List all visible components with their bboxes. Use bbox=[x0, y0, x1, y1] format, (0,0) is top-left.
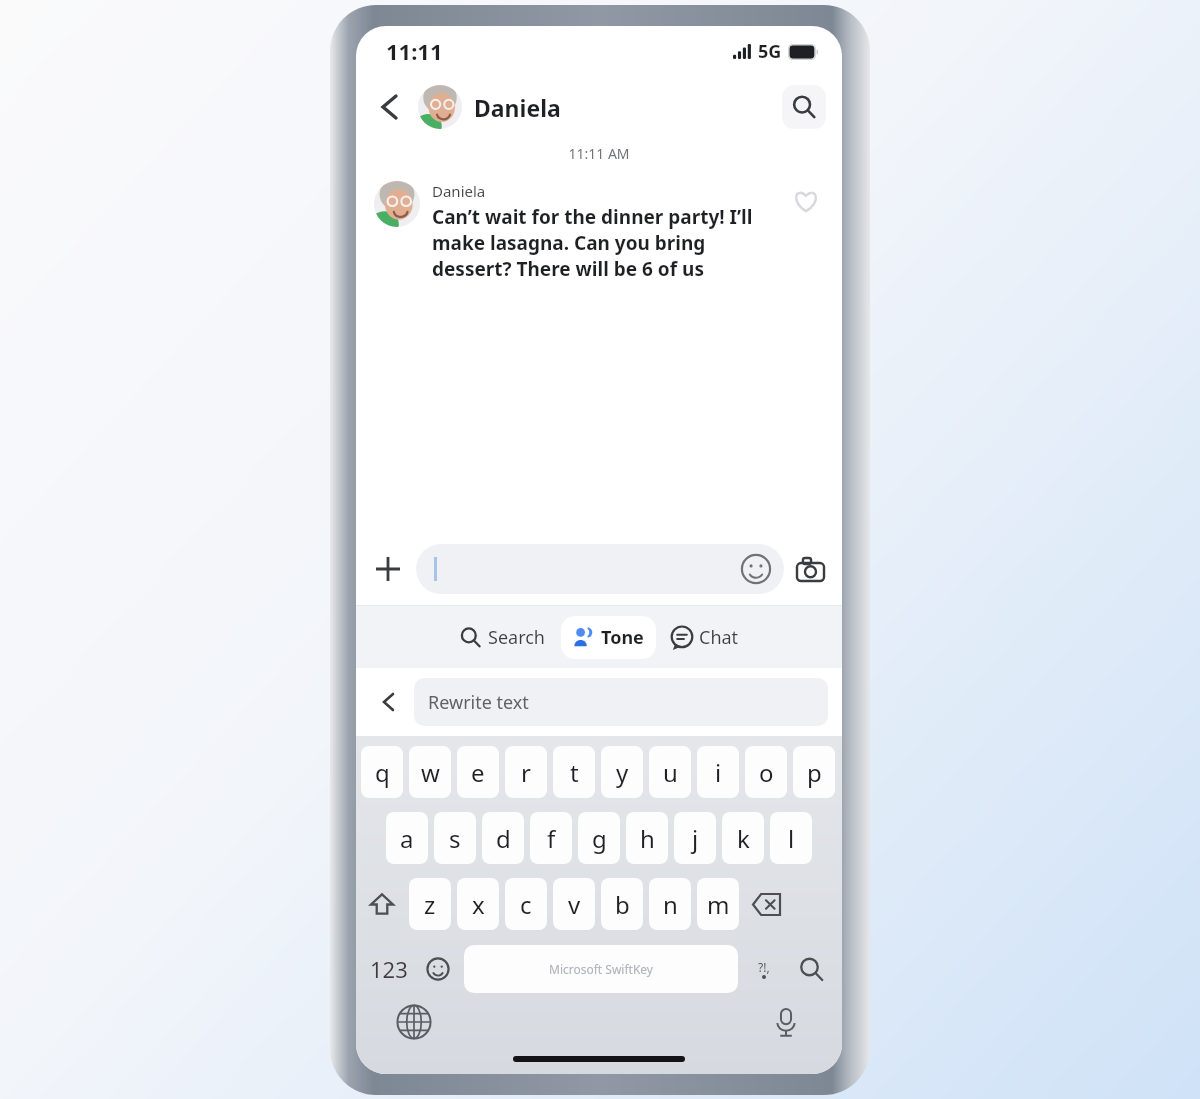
staticText: Daniela bbox=[432, 181, 486, 201]
staticText: Can’t wait for the dinner party! I’ll ma… bbox=[432, 204, 786, 282]
staticText: x bbox=[472, 888, 485, 921]
staticText: q bbox=[375, 756, 390, 789]
button[interactable]: v bbox=[553, 878, 595, 930]
button[interactable]: j bbox=[674, 812, 716, 864]
staticText: 5G bbox=[758, 39, 782, 64]
button[interactable]: Tone bbox=[561, 616, 656, 659]
staticText: p bbox=[807, 756, 822, 789]
button[interactable]: z bbox=[409, 878, 451, 930]
button[interactable]: c bbox=[505, 878, 547, 930]
button[interactable]: t bbox=[553, 746, 595, 798]
staticText: f bbox=[547, 822, 556, 855]
staticText: Microsoft SwiftKey bbox=[549, 961, 653, 977]
staticText: m bbox=[707, 888, 730, 921]
button[interactable]: Chat bbox=[662, 619, 747, 656]
button[interactable]: Search bbox=[786, 942, 836, 996]
button[interactable]: Rewrite text bbox=[414, 678, 828, 726]
button[interactable]: o bbox=[745, 746, 787, 798]
button[interactable]: Change language bbox=[396, 1004, 432, 1040]
staticText: w bbox=[421, 756, 440, 789]
staticText: h bbox=[640, 822, 655, 855]
staticText: i bbox=[715, 756, 722, 789]
staticText: k bbox=[737, 822, 750, 855]
button[interactable]: k bbox=[722, 812, 764, 864]
staticText: e bbox=[471, 756, 485, 789]
staticText: ?!, bbox=[758, 959, 770, 975]
button[interactable]: Emoji bbox=[416, 544, 784, 594]
staticText: o bbox=[759, 756, 774, 789]
button[interactable]: m bbox=[697, 878, 739, 930]
button[interactable]: i bbox=[697, 746, 739, 798]
button[interactable]: Voice input bbox=[768, 1004, 804, 1040]
button[interactable]: Search bbox=[452, 619, 553, 656]
button[interactable]: p bbox=[793, 746, 835, 798]
staticText: b bbox=[615, 888, 630, 921]
staticText: a bbox=[400, 822, 414, 855]
staticText: j bbox=[692, 822, 699, 855]
staticText: n bbox=[663, 888, 678, 921]
button[interactable]: q bbox=[361, 746, 403, 798]
staticText: y bbox=[616, 756, 629, 789]
button[interactable]: h bbox=[626, 812, 668, 864]
staticText: Daniela bbox=[474, 92, 561, 123]
staticText: Search bbox=[488, 625, 545, 650]
staticText: d bbox=[496, 822, 511, 855]
button[interactable]: Emoji bbox=[416, 942, 460, 996]
button[interactable]: e bbox=[457, 746, 499, 798]
button[interactable]: s bbox=[434, 812, 476, 864]
button[interactable]: x bbox=[457, 878, 499, 930]
staticText: 123 bbox=[370, 954, 408, 984]
staticText: v bbox=[568, 888, 581, 921]
staticText: Tone bbox=[601, 625, 644, 650]
button[interactable]: a bbox=[386, 812, 428, 864]
button[interactable]: f bbox=[530, 812, 572, 864]
staticText: c bbox=[520, 888, 532, 921]
staticText: 11:11 bbox=[386, 36, 443, 66]
button[interactable]: Camera bbox=[788, 547, 832, 591]
button[interactable]: b bbox=[601, 878, 643, 930]
staticText: r bbox=[521, 756, 531, 789]
button[interactable]: Microsoft SwiftKey bbox=[464, 945, 738, 993]
button[interactable]: y bbox=[601, 746, 643, 798]
button[interactable]: Emoji bbox=[740, 553, 772, 585]
staticText: g bbox=[592, 822, 607, 855]
button[interactable]: n bbox=[649, 878, 691, 930]
button[interactable]: d bbox=[482, 812, 524, 864]
staticText: t bbox=[570, 756, 579, 789]
staticText: s bbox=[449, 822, 461, 855]
button[interactable]: Backspace bbox=[742, 878, 790, 930]
staticText: l bbox=[788, 822, 795, 855]
button[interactable]: Back bbox=[368, 86, 410, 128]
button[interactable]: g bbox=[578, 812, 620, 864]
staticText: z bbox=[424, 888, 436, 921]
button[interactable]: Back bbox=[370, 684, 406, 720]
button[interactable]: u bbox=[649, 746, 691, 798]
button[interactable]: Shift bbox=[358, 878, 406, 930]
button[interactable]: Like bbox=[786, 181, 826, 221]
staticText: u bbox=[663, 756, 678, 789]
button[interactable]: Daniela bbox=[418, 85, 561, 129]
staticText: Chat bbox=[699, 625, 739, 650]
button[interactable]: Search bbox=[782, 85, 826, 129]
button[interactable]: Add attachment bbox=[366, 547, 410, 591]
staticText: Rewrite text bbox=[428, 690, 529, 715]
button[interactable]: l bbox=[770, 812, 812, 864]
button[interactable]: w bbox=[409, 746, 451, 798]
button[interactable]: Punctuation bbox=[742, 942, 786, 996]
button[interactable]: r bbox=[505, 746, 547, 798]
button[interactable]: 123 bbox=[362, 942, 416, 996]
staticText: 11:11 AM bbox=[356, 144, 842, 163]
